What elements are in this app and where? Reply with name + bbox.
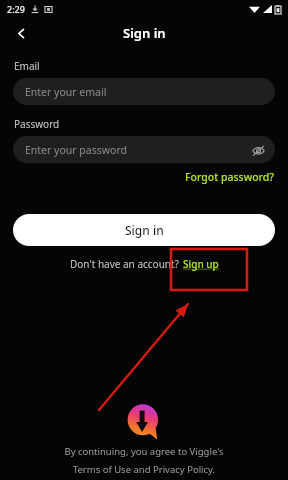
- staticText: Email: [14, 59, 40, 73]
- button[interactable]: Forgot password?: [185, 170, 275, 184]
- staticText: Forgot password?: [185, 170, 275, 184]
- button[interactable]: Enter your password: [13, 136, 275, 163]
- staticText: 2:29: [7, 3, 25, 15]
- button[interactable]: Enter your email: [13, 78, 275, 105]
- staticText: Sign in: [123, 24, 166, 42]
- staticText: Enter your password: [25, 143, 127, 157]
- button[interactable]: Back: [10, 22, 32, 44]
- button[interactable]: Sign in: [13, 214, 275, 246]
- staticText: Terms of Use and Privacy Policy.: [0, 463, 288, 476]
- staticText: Enter your email: [25, 85, 107, 99]
- staticText: By continuing, you agree to Viggle's: [0, 445, 288, 458]
- staticText: Don't have an account?: [70, 257, 179, 271]
- staticText: Password: [14, 117, 60, 131]
- staticText: Sign up: [183, 257, 219, 271]
- button[interactable]: Sign up: [183, 257, 219, 271]
- staticText: Sign in: [125, 222, 164, 238]
- button[interactable]: Show password: [249, 141, 267, 159]
